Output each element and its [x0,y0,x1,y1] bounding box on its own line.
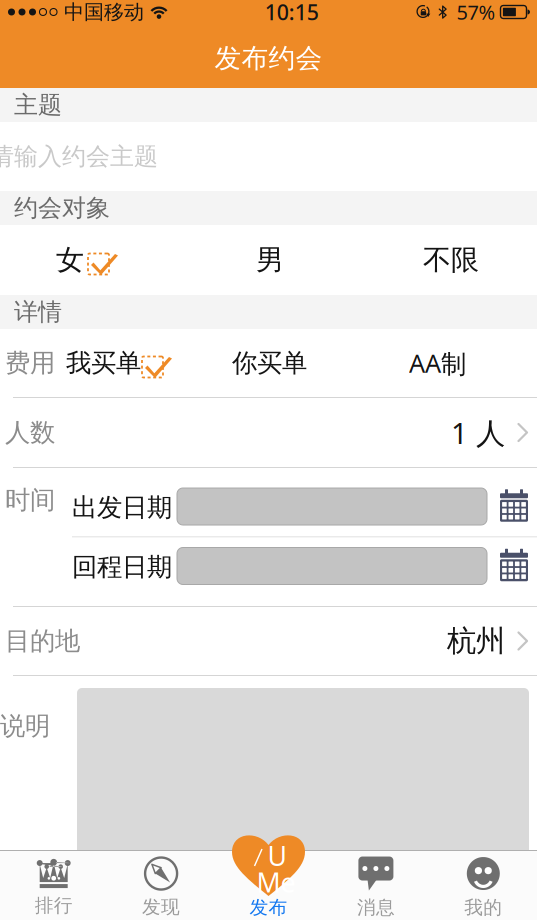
button[interactable]: 人数 [0,398,537,467]
staticText: 女 [56,243,84,277]
button[interactable]: 我买单 [66,347,171,378]
staticText: 详情 [14,297,62,327]
staticText: Me [256,864,295,900]
staticText: 说明 [0,710,50,741]
staticText: 我买单 [66,347,141,378]
button[interactable]: 女 [56,243,117,277]
staticText: 时间 [5,484,55,515]
staticText: 人数 [5,417,55,448]
staticText: 杭州 [447,623,505,659]
staticText: 发现 [142,895,180,918]
staticText: 10:15 [265,0,319,26]
staticText: 57% [456,0,495,25]
staticText: 发布 [249,896,287,919]
staticText: AA制 [409,346,466,380]
staticText: 发布约会 [214,42,322,75]
staticText: 目的地 [5,625,80,656]
button[interactable]: 消息 [322,851,430,920]
button[interactable]: 不限 [423,243,479,277]
staticText: 不限 [423,243,479,277]
button[interactable]: 排行 [0,851,107,920]
staticText: U [267,838,286,873]
button[interactable]: AA制 [409,346,466,380]
staticText: 中国移动 [64,0,144,24]
staticText: 请输入约会主题 [0,142,158,171]
staticText: 我的 [464,896,502,919]
staticText: 费用 [5,347,55,378]
button[interactable]: 发布 [215,851,322,920]
button[interactable]: 男 [256,243,284,277]
staticText: 1 人 [451,413,505,452]
button[interactable]: 回程日期 [500,546,528,579]
button[interactable]: 你买单 [232,347,307,378]
button[interactable]: 我的 [430,851,537,920]
staticText: 消息 [357,896,395,919]
staticText: 男 [256,243,284,277]
staticText: 出发日期 [72,492,172,523]
button[interactable]: 发现 [107,851,215,920]
staticText: 约会对象 [14,193,110,223]
button[interactable]: 目的地 [0,607,537,675]
button[interactable]: 出发日期 [500,487,528,520]
button[interactable]: 发布 [231,830,305,897]
staticText: 回程日期 [72,551,172,583]
staticText: 排行 [35,894,73,917]
staticText: 主题 [14,90,62,120]
staticText: 你买单 [232,347,307,378]
